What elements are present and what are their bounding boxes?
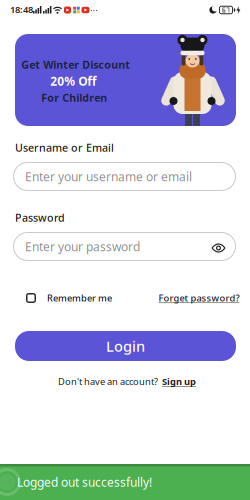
staticText: For Children: [41, 90, 107, 105]
staticText: Password: [15, 210, 65, 225]
staticText: Forget password?: [158, 292, 239, 304]
staticText: Username or Email: [15, 140, 114, 155]
button[interactable]: Sign up: [162, 375, 196, 388]
staticText: Login: [106, 336, 145, 356]
staticText: 20% Off: [50, 73, 96, 89]
staticText: Enter your username or email: [25, 168, 192, 184]
button[interactable]: Remember me: [26, 292, 112, 304]
staticText: Logged out successfully!: [17, 474, 152, 490]
staticText: Don't have an account?: [58, 375, 158, 388]
button[interactable]: Enter your password: [13, 232, 236, 261]
button[interactable]: Enter your username or email: [13, 162, 236, 191]
staticText: Get Winter Discount: [21, 57, 130, 72]
staticText: Enter your password: [25, 238, 140, 254]
staticText: Remember me: [47, 292, 112, 304]
staticText: Sign up: [162, 375, 196, 388]
staticText: 18:48: [10, 3, 33, 16]
button[interactable]: Forget password?: [158, 292, 239, 304]
button[interactable]: Login: [15, 331, 236, 361]
